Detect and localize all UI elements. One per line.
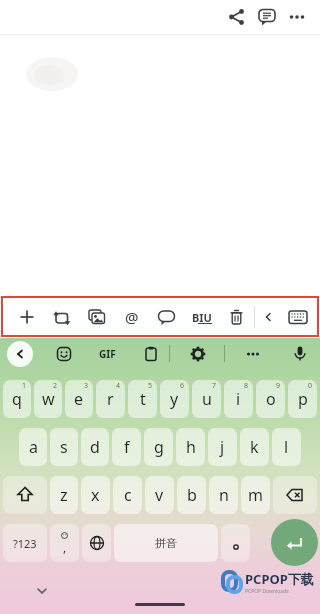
staticText: l [284,436,289,458]
button[interactable] [281,299,315,335]
button[interactable]: q [3,380,31,418]
button[interactable] [221,524,250,562]
staticText: i [236,388,241,410]
staticText: a [29,436,38,458]
button[interactable] [7,341,33,367]
button[interactable]: z [50,476,78,514]
button[interactable] [9,299,44,335]
button[interactable] [3,476,47,514]
staticText: c [124,484,132,506]
button[interactable]: n [209,476,238,514]
button[interactable]: p [288,380,317,418]
staticText: @ [125,307,139,327]
button[interactable]: BIU [184,299,219,335]
button[interactable]: h [176,428,205,466]
staticText: h [186,436,196,458]
button[interactable]: GIF [94,340,121,367]
button[interactable] [271,519,318,566]
button[interactable]: a [19,428,47,466]
staticText: ?123 [13,536,37,551]
staticText: o [266,388,276,410]
button[interactable] [82,524,111,562]
staticText: 6 [180,381,185,391]
button[interactable]: t [128,380,157,418]
button[interactable]: b [177,476,206,514]
staticText: 9 [276,381,281,391]
staticText: u [202,388,212,410]
staticText: v [155,484,164,506]
button[interactable]: e [65,380,93,418]
staticText: g [154,436,164,458]
staticText: s [60,436,68,458]
staticText: e [74,388,84,410]
button[interactable]: j [208,428,237,466]
staticText: m [248,484,263,506]
staticText: x [91,484,100,506]
staticText: PCPOP下载 [245,570,314,588]
staticText: k [250,436,259,458]
button[interactable]: c [113,476,142,514]
staticText: n [219,484,229,506]
button[interactable] [222,2,252,32]
button[interactable]: r [96,380,125,418]
button[interactable] [252,2,282,32]
button[interactable]: ?123 [3,524,47,562]
button[interactable]: x [81,476,110,514]
button[interactable]: v [145,476,174,514]
button[interactable]: s [50,428,78,466]
button[interactable]: o [256,380,285,418]
staticText: z [60,484,68,506]
staticText: 3 [84,381,89,391]
button[interactable] [28,581,56,601]
button[interactable] [239,340,266,367]
button[interactable]: y [160,380,189,418]
button[interactable] [184,340,211,367]
button[interactable]: g [144,428,173,466]
button[interactable]: w [34,380,62,418]
staticText: 1 [22,381,27,391]
button[interactable]: f [112,428,141,466]
staticText: 2 [53,381,58,391]
staticText: 0 [308,381,313,391]
button[interactable]: l [272,428,301,466]
button[interactable]: k [240,428,269,466]
button[interactable]: m [241,476,270,514]
staticText: GIF [99,347,116,361]
button[interactable]: , [50,524,79,562]
staticText: BIU [192,310,212,325]
button[interactable]: 拼音 [114,524,218,562]
button[interactable] [50,340,77,367]
staticText: 拼音 [155,536,177,550]
staticText: r [107,388,114,410]
staticText: 5 [148,381,153,391]
button[interactable]: @ [114,299,149,335]
staticText: PCPOP Downloads [245,588,289,595]
staticText: t [140,388,146,410]
staticText: 8 [244,381,249,391]
button[interactable] [219,299,254,335]
staticText: y [170,388,179,410]
staticText: d [90,436,100,458]
staticText: 4 [116,381,121,391]
staticText: q [12,388,22,410]
button[interactable]: i [224,380,253,418]
staticText: b [187,484,197,506]
button[interactable]: d [81,428,109,466]
staticText: w [42,388,55,410]
button[interactable] [137,340,164,367]
button[interactable] [282,2,312,32]
button[interactable]: u [192,380,221,418]
button[interactable] [149,299,184,335]
staticText: , [63,539,67,555]
staticText: 7 [212,381,217,391]
button[interactable] [273,476,317,514]
staticText: p [298,388,308,410]
staticText: f [124,436,130,458]
button[interactable] [286,340,313,367]
button[interactable] [79,299,114,335]
button[interactable] [255,299,281,335]
button[interactable] [44,299,79,335]
staticText: j [220,436,225,458]
